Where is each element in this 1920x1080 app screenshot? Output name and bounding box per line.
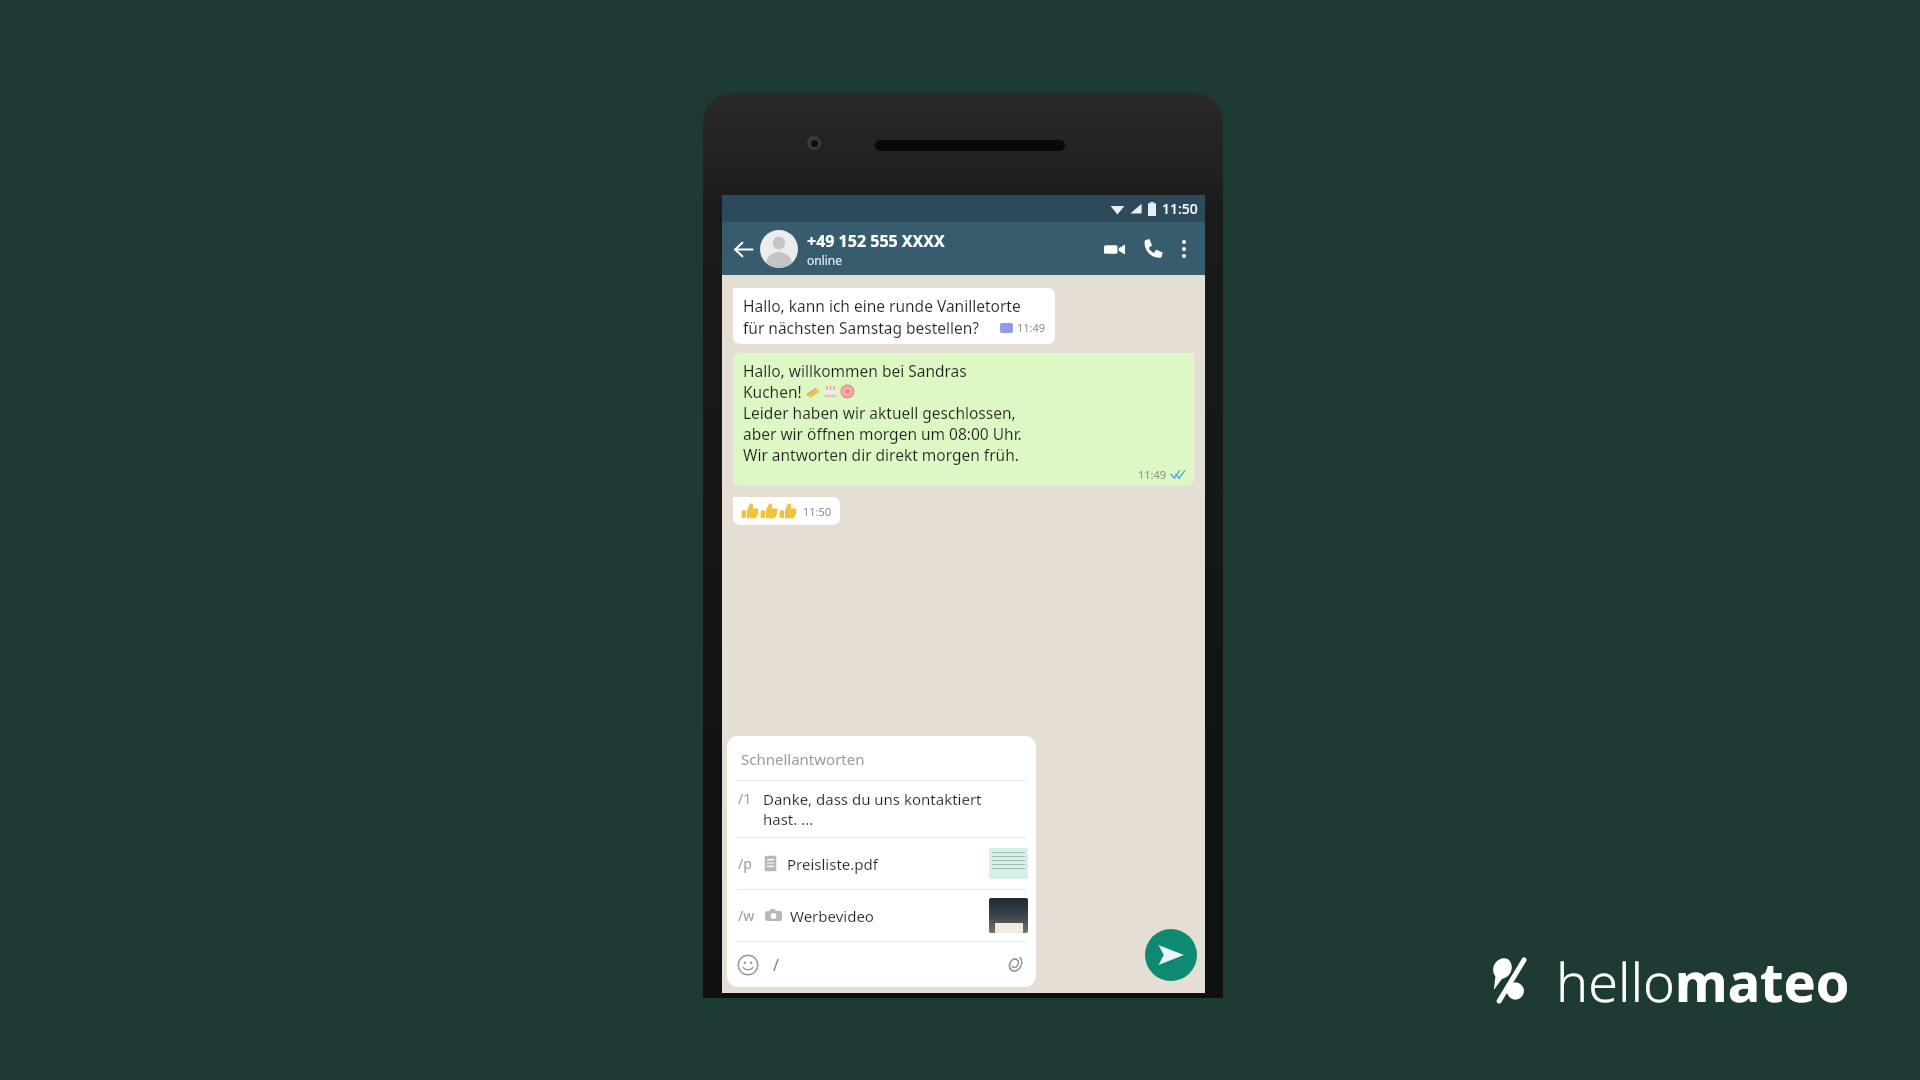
staticText: aber wir öffnen morgen um 08:00 Uhr. [743, 423, 1022, 444]
button[interactable]: Emoji [737, 954, 759, 976]
staticText: Preisliste.pdf [787, 854, 878, 874]
staticText: /w [738, 906, 755, 925]
staticText: 11:50 [1162, 199, 1198, 218]
button[interactable] [760, 230, 798, 268]
staticText: 11:49 [1017, 320, 1046, 335]
staticText: für nächsten Samstag bestellen? [743, 317, 980, 338]
staticText: hello [1556, 944, 1675, 1018]
staticText: 11:50 [803, 504, 832, 519]
button[interactable]: Send [1145, 929, 1197, 981]
staticText: hast. ... [763, 809, 814, 829]
button[interactable]: Back [729, 235, 757, 263]
staticText: Hallo, kann ich eine runde Vanilletorte [743, 295, 1021, 316]
staticText: mateo [1675, 944, 1850, 1018]
staticText: 11:49 [1138, 467, 1167, 482]
button[interactable]: More options [1170, 235, 1198, 263]
button[interactable]: Attach [1003, 953, 1026, 976]
staticText: +49 152 555 XXXX [807, 230, 945, 252]
staticText: /1 [738, 789, 752, 808]
staticText: Hallo, willkommen bei Sandras [743, 360, 967, 381]
staticText: / [773, 954, 779, 976]
button[interactable]: Call [1136, 232, 1170, 266]
staticText: /p [738, 854, 752, 873]
button[interactable]: /p [727, 838, 1036, 889]
button[interactable]: /1 [727, 781, 1036, 837]
staticText: Danke, dass du uns kontaktiert [763, 789, 982, 809]
button[interactable]: 11:50 [733, 497, 840, 525]
staticText: Leider haben wir aktuell geschlossen, [743, 402, 1016, 423]
staticText: Kuchen! [743, 381, 806, 402]
button[interactable]: Hallo, kann ich eine runde Vanilletorte [733, 288, 1055, 344]
button[interactable]: /w [727, 890, 1036, 941]
button[interactable]: Video call [1097, 232, 1131, 266]
staticText: Wir antworten dir direkt morgen früh. [743, 444, 1019, 465]
button[interactable]: Hallo, willkommen bei Sandras [733, 353, 1194, 486]
staticText: Schnellantworten [741, 749, 865, 769]
staticText: online [807, 252, 843, 268]
staticText: Werbevideo [790, 906, 874, 926]
